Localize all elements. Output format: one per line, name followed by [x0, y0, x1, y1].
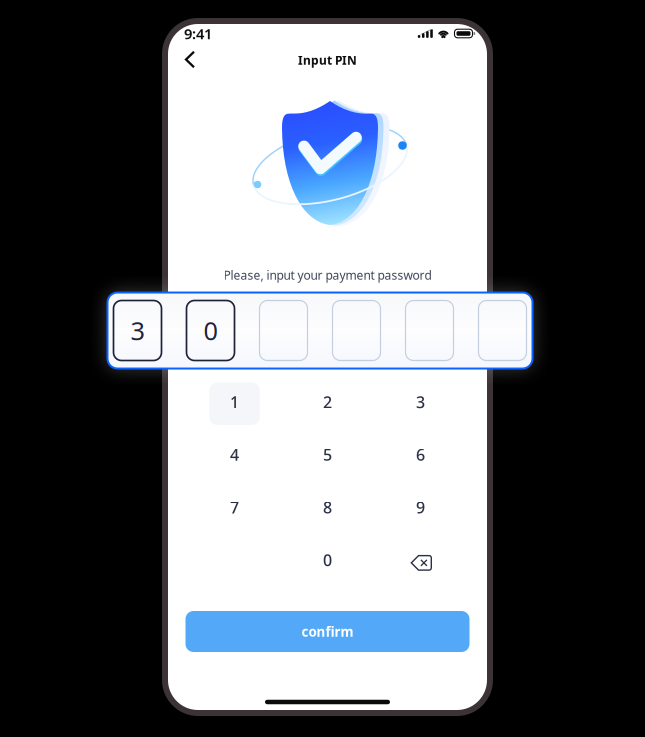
button[interactable]: 0 [281, 534, 374, 586]
button[interactable]: 5 [281, 428, 374, 481]
button[interactable]: confirm [185, 611, 469, 652]
button[interactable]: 4 [188, 428, 281, 481]
button[interactable]: Back [168, 42, 210, 77]
button[interactable]: 7 [188, 481, 281, 534]
staticText: 4 [230, 444, 239, 465]
button[interactable]: Delete [374, 534, 467, 586]
staticText: 2 [323, 391, 332, 412]
button[interactable]: 8 [281, 481, 374, 534]
button[interactable]: 9 [374, 481, 467, 534]
staticText: 6 [416, 444, 425, 465]
staticText: 8 [323, 497, 332, 518]
staticText: Please, input your payment password [223, 267, 431, 283]
staticText: 9:41 [184, 24, 212, 43]
staticText: 3 [130, 314, 144, 347]
staticText: 9 [416, 497, 425, 518]
staticText: 0 [323, 549, 332, 571]
staticText: 3 [416, 391, 425, 412]
button[interactable]: 6 [374, 428, 467, 481]
staticText: Input PIN [298, 52, 357, 68]
staticText: confirm [301, 623, 353, 640]
staticText: 7 [230, 497, 239, 518]
button[interactable]: 2 [281, 376, 374, 428]
button[interactable]: 3 [374, 376, 467, 428]
button[interactable]: 1 [188, 376, 281, 428]
staticText: 5 [323, 444, 332, 465]
staticText: 0 [203, 314, 217, 347]
staticText: 1 [230, 391, 239, 412]
